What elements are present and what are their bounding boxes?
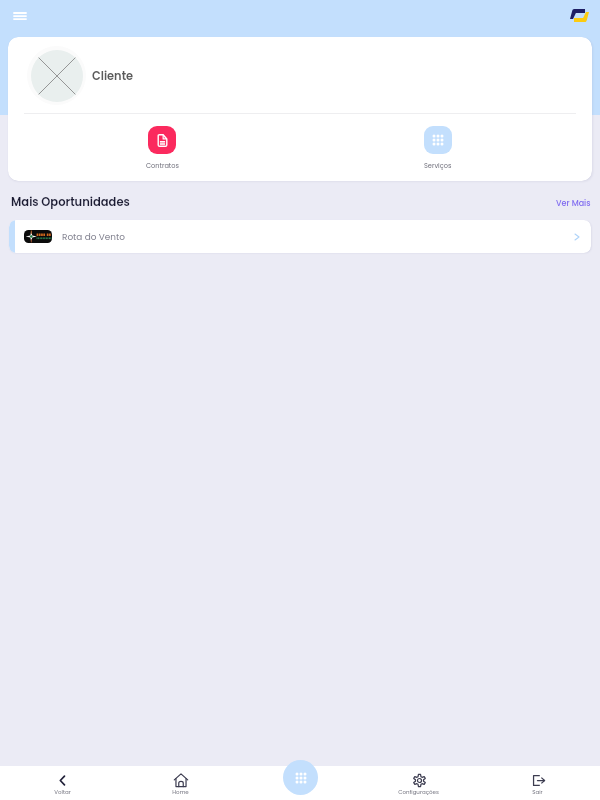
- staticText: Contratos: [146, 161, 179, 170]
- button[interactable]: Sair: [478, 766, 597, 800]
- staticText: Sair: [532, 788, 543, 796]
- staticText: Ver Mais: [556, 198, 591, 209]
- button[interactable]: Configurações: [359, 766, 478, 800]
- staticText: Cliente: [92, 68, 134, 84]
- button[interactable]: Rota do Vento: [9, 220, 591, 253]
- button[interactable]: Ver Mais: [556, 197, 600, 208]
- button[interactable]: Apps: [283, 760, 318, 795]
- button[interactable]: App logo: [568, 4, 590, 26]
- button[interactable]: Voltar: [3, 766, 121, 800]
- staticText: Mais Oportunidades: [11, 194, 130, 210]
- staticText: Voltar: [54, 788, 71, 796]
- button[interactable]: Home: [121, 766, 240, 800]
- button[interactable]: Serviços: [300, 114, 576, 181]
- staticText: Home: [172, 788, 189, 796]
- staticText: Configurações: [398, 788, 439, 796]
- staticText: Serviços: [424, 161, 452, 170]
- button[interactable]: Menu: [8, 4, 31, 27]
- staticText: Rota do Vento: [62, 231, 125, 243]
- button[interactable]: Contratos: [24, 114, 300, 181]
